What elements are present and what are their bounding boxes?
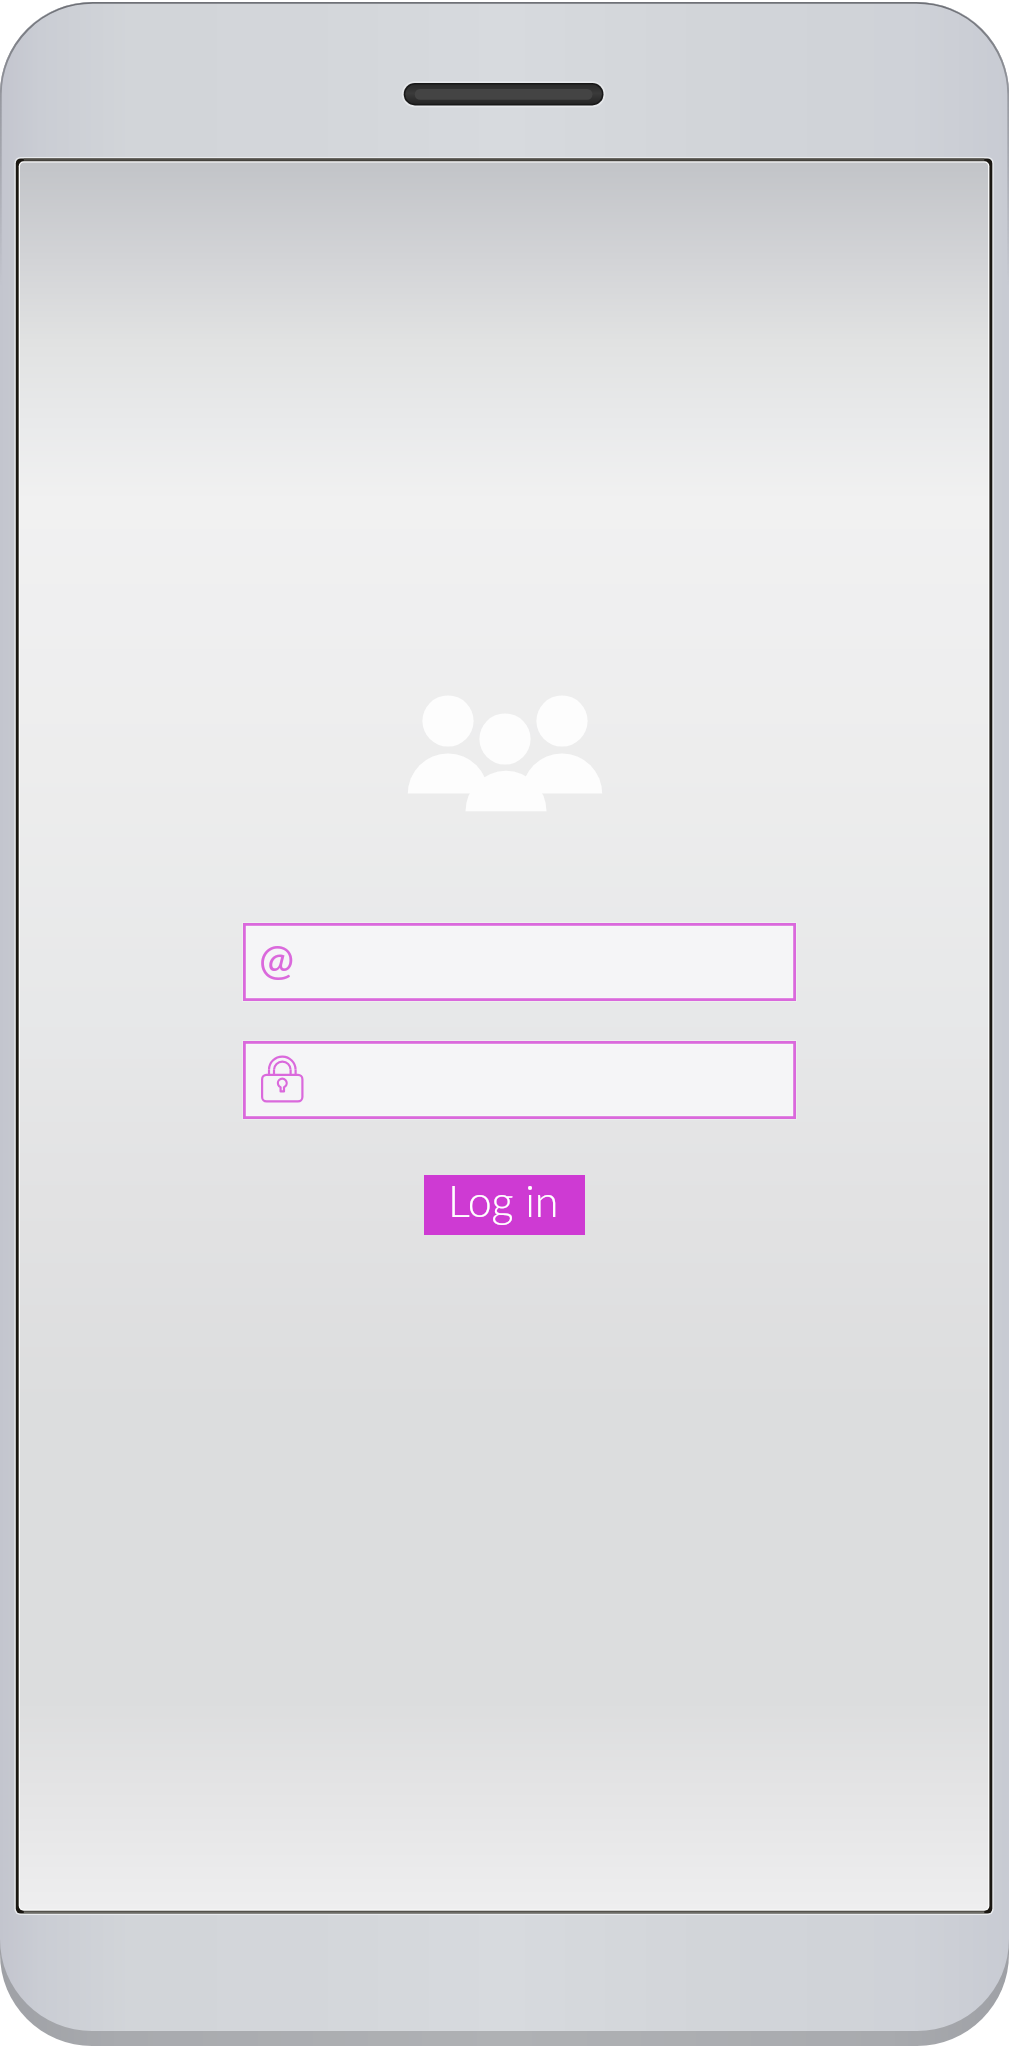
staticText: Log in xyxy=(448,1175,559,1227)
button[interactable]: Log in xyxy=(424,1175,585,1235)
staticText: @ xyxy=(259,934,295,982)
button[interactable]: Password xyxy=(243,1041,796,1119)
button[interactable]: Email address xyxy=(243,923,796,1001)
